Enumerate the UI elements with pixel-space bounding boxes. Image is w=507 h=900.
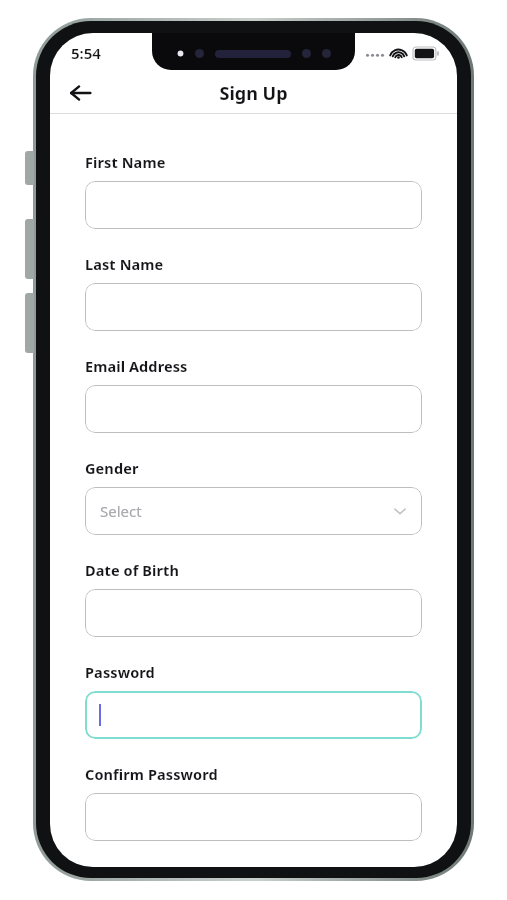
button[interactable]: Back bbox=[60, 73, 100, 113]
staticText: Confirm Password bbox=[85, 764, 218, 784]
staticText: Sign Up bbox=[219, 81, 288, 106]
staticText: Password bbox=[85, 662, 155, 682]
button[interactable]: Gender bbox=[85, 487, 422, 535]
staticText: Last Name bbox=[85, 254, 164, 274]
button[interactable]: Last Name bbox=[85, 283, 422, 331]
staticText: Date of Birth bbox=[85, 560, 179, 580]
staticText: Gender bbox=[85, 458, 139, 478]
staticText: First Name bbox=[85, 152, 166, 172]
staticText: Email Address bbox=[85, 356, 188, 376]
button[interactable]: Date of Birth bbox=[85, 589, 422, 637]
staticText: Select bbox=[100, 501, 142, 521]
button[interactable]: Email Address bbox=[85, 385, 422, 433]
button[interactable]: First Name bbox=[85, 181, 422, 229]
button[interactable]: Confirm Password bbox=[85, 793, 422, 841]
button[interactable]: Password bbox=[85, 691, 422, 739]
staticText: 5:54 bbox=[71, 43, 101, 63]
